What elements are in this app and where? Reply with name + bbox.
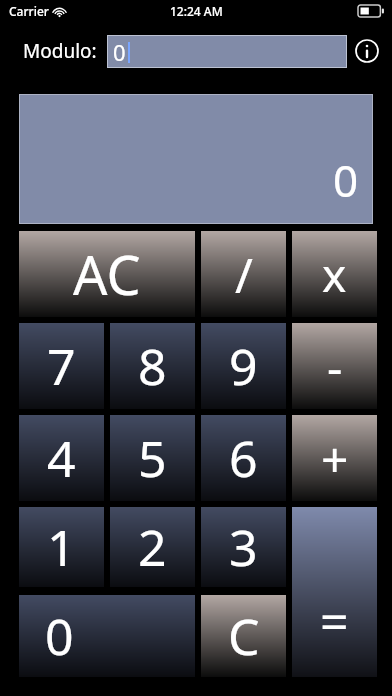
staticText: C — [228, 602, 260, 670]
button[interactable]: 6 — [201, 415, 286, 501]
staticText: 6 — [229, 424, 258, 492]
button[interactable]: 5 — [110, 415, 195, 501]
staticText: 5 — [138, 424, 167, 492]
button[interactable]: C — [201, 595, 286, 677]
staticText: 12:24 AM — [170, 3, 223, 19]
staticText: Carrier — [9, 3, 49, 19]
staticText: x — [322, 243, 347, 306]
button[interactable]: 0 — [107, 35, 347, 68]
staticText: 7 — [47, 332, 76, 400]
staticText: AC — [73, 237, 141, 311]
staticText: 0 — [333, 150, 359, 210]
staticText: Modulo: — [23, 38, 97, 64]
button[interactable]: + — [292, 415, 377, 501]
button[interactable]: - — [292, 323, 377, 409]
staticText: 3 — [229, 513, 258, 581]
button[interactable]: x — [292, 231, 377, 317]
button[interactable]: 3 — [201, 507, 286, 587]
staticText: 8 — [138, 332, 167, 400]
staticText: 4 — [47, 424, 76, 492]
button[interactable]: 2 — [110, 507, 195, 587]
button[interactable]: 4 — [19, 415, 104, 501]
staticText: / — [235, 242, 253, 307]
button[interactable]: 9 — [201, 323, 286, 409]
button[interactable]: Info — [354, 38, 380, 64]
button[interactable]: AC — [19, 231, 195, 317]
button[interactable]: / — [201, 231, 286, 317]
staticText: = — [320, 587, 349, 655]
staticText: 0 — [113, 37, 126, 67]
staticText: 1 — [47, 513, 76, 581]
staticText: 2 — [138, 513, 167, 581]
button[interactable]: 1 — [19, 507, 104, 587]
button[interactable]: = — [292, 507, 377, 677]
staticText: + — [321, 426, 349, 491]
button[interactable]: 8 — [110, 323, 195, 409]
button[interactable]: 7 — [19, 323, 104, 409]
button[interactable]: 0 — [19, 595, 195, 677]
staticText: - — [327, 334, 343, 399]
staticText: 0 — [45, 602, 74, 670]
staticText: 9 — [229, 332, 258, 400]
